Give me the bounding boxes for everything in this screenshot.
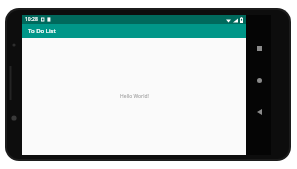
button[interactable]: Recent apps bbox=[251, 40, 267, 56]
button[interactable]: Back bbox=[251, 104, 267, 120]
button[interactable]: To Do List bbox=[22, 24, 246, 38]
staticText: To Do List bbox=[28, 27, 56, 35]
staticText: Hello World! bbox=[120, 93, 149, 100]
button[interactable]: Home bbox=[251, 72, 267, 88]
staticText: 10:28 bbox=[25, 16, 38, 23]
